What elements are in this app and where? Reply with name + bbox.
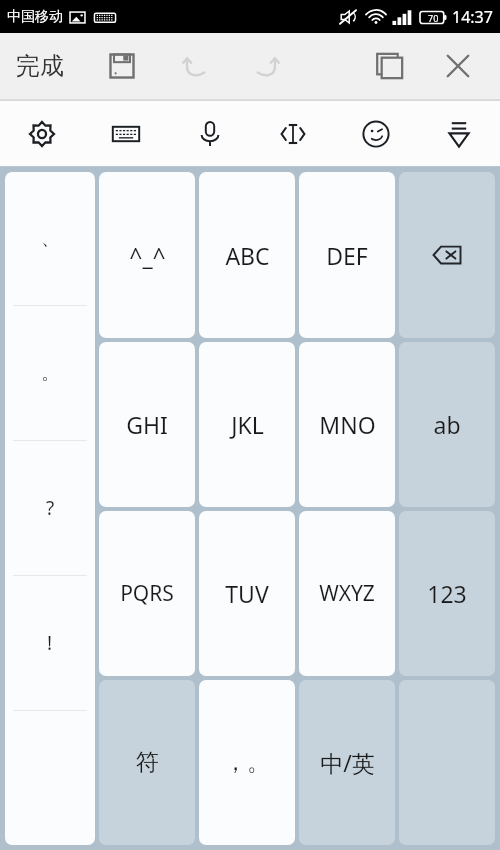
staticText: GHI [126, 409, 168, 440]
staticText: ABC [225, 240, 270, 271]
staticText: PQRS [120, 579, 174, 608]
button[interactable]: ^_^ [99, 172, 195, 338]
button[interactable]: Backspace [399, 172, 495, 338]
button[interactable]: 符 [99, 680, 195, 845]
staticText: 中/英 [320, 747, 375, 778]
staticText: ! [47, 630, 53, 656]
staticText: 中国移动 [7, 8, 63, 26]
button[interactable]: 完成 [0, 33, 80, 99]
staticText: ? [46, 495, 55, 521]
button[interactable]: MNO [299, 342, 395, 507]
button[interactable]: Keyboard [84, 101, 168, 166]
button[interactable]: DEF [299, 172, 395, 338]
button[interactable]: PQRS [99, 511, 195, 676]
button[interactable]: ! [5, 576, 95, 710]
button[interactable]: Undo [172, 42, 220, 90]
staticText: WXYZ [319, 579, 375, 608]
staticText: 、 [41, 227, 60, 251]
staticText: ab [433, 409, 461, 440]
button[interactable]: TUV [199, 511, 295, 676]
button[interactable]: 。 [5, 306, 95, 440]
button[interactable]: Hide keyboard [417, 101, 500, 166]
button[interactable]: Emoji [334, 101, 417, 166]
button[interactable]: ，。 [199, 680, 295, 845]
button[interactable]: ab [399, 342, 495, 507]
staticText: MNO [319, 409, 376, 440]
button[interactable]: ? [5, 441, 95, 575]
button[interactable]: JKL [199, 342, 295, 507]
button[interactable]: Close [434, 42, 482, 90]
button[interactable]: Redo [242, 42, 290, 90]
staticText: JKL [231, 409, 264, 440]
staticText: TUV [225, 578, 269, 609]
button[interactable]: GHI [99, 342, 195, 507]
button[interactable]: Save [98, 42, 146, 90]
staticText: 完成 [16, 51, 64, 81]
staticText: ，。 [224, 748, 270, 777]
staticText: ^_^ [129, 240, 166, 271]
staticText: 70 [428, 12, 439, 24]
staticText: 14:37 [452, 6, 493, 28]
button[interactable]: ABC [199, 172, 295, 338]
button[interactable]: 中/英 [299, 680, 395, 845]
staticText: 123 [427, 578, 467, 609]
button[interactable]: Windows, 2 open [366, 42, 414, 90]
button[interactable]: Settings [0, 101, 84, 166]
button[interactable]: 、 [5, 172, 95, 305]
button[interactable]: WXYZ [299, 511, 395, 676]
staticText: DEF [326, 240, 368, 271]
staticText: 。 [41, 361, 60, 385]
button[interactable]: 123 [399, 511, 495, 676]
button[interactable]: Voice input [168, 101, 251, 166]
staticText: 符 [136, 748, 159, 777]
button[interactable]: Move cursor [251, 101, 334, 166]
